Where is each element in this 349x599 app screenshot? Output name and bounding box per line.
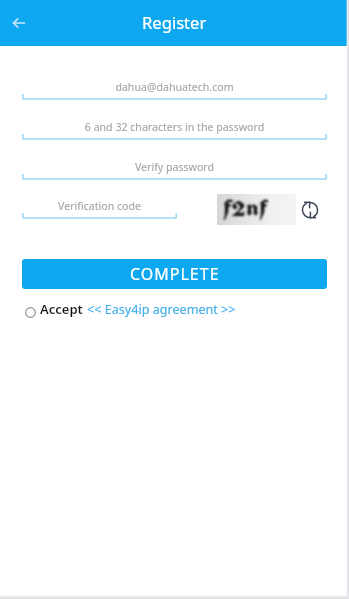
staticText: COMPLETE: [130, 263, 220, 285]
staticText: Verify password: [22, 160, 327, 174]
staticText: f2nf: [223, 193, 267, 222]
staticText: Verification code: [22, 199, 177, 213]
button[interactable]: << Easy4ip agreement >>: [87, 301, 236, 318]
staticText: Accept: [40, 300, 87, 318]
button[interactable]: dahua@dahuatech.com: [22, 68, 327, 100]
button[interactable]: 6 and 32 characters in the password: [22, 108, 327, 140]
button[interactable]: Captcha image: [217, 194, 296, 225]
button[interactable]: Accept agreement: [22, 304, 38, 320]
button[interactable]: Refresh captcha: [297, 197, 323, 223]
button[interactable]: Back: [4, 8, 34, 38]
staticText: 6 and 32 characters in the password: [22, 120, 327, 134]
button[interactable]: COMPLETE: [22, 259, 327, 289]
staticText: dahua@dahuatech.com: [22, 80, 327, 94]
button[interactable]: Verification code: [22, 187, 177, 219]
staticText: Register: [142, 11, 207, 34]
button[interactable]: Verify password: [22, 148, 327, 180]
